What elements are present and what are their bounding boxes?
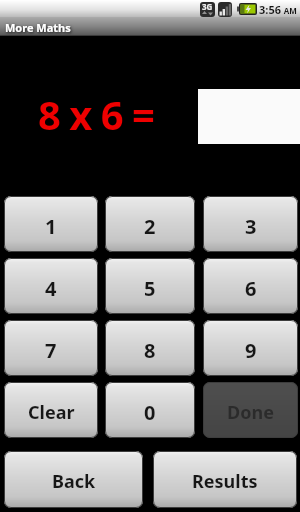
staticText: Clear	[28, 400, 75, 425]
button[interactable]: 6	[203, 258, 298, 314]
staticText: 3:56 AM	[259, 2, 297, 17]
staticText: More Maths	[5, 20, 71, 35]
staticText: 6	[245, 275, 257, 302]
button[interactable]: 0	[105, 382, 195, 438]
button[interactable]: Done	[203, 382, 298, 438]
staticText: 8	[144, 337, 156, 364]
staticText: Back	[52, 469, 96, 494]
staticText: 7	[45, 337, 57, 364]
button[interactable]: 2	[105, 196, 195, 252]
staticText: Done	[227, 400, 274, 425]
staticText: Results	[192, 469, 258, 494]
button[interactable]: 5	[105, 258, 195, 314]
staticText: 8 x 6 =	[38, 87, 154, 141]
staticText: 2	[144, 213, 156, 240]
staticText: 3	[245, 213, 257, 240]
staticText: 9	[245, 337, 257, 364]
button[interactable]: 7	[4, 320, 98, 376]
staticText: 4	[45, 275, 57, 302]
staticText: 1	[45, 213, 57, 240]
button[interactable]: 1	[4, 196, 98, 252]
button[interactable]: Clear	[4, 382, 98, 438]
staticText: 3G	[202, 2, 213, 12]
button[interactable]: 8	[105, 320, 195, 376]
button[interactable]: 3	[203, 196, 298, 252]
button[interactable]: Results	[153, 451, 297, 508]
button[interactable]: 4	[4, 258, 98, 314]
button[interactable]: 9	[203, 320, 298, 376]
staticText: 0	[144, 399, 156, 426]
staticText: 5	[144, 275, 156, 302]
button[interactable]: Back	[4, 451, 143, 508]
